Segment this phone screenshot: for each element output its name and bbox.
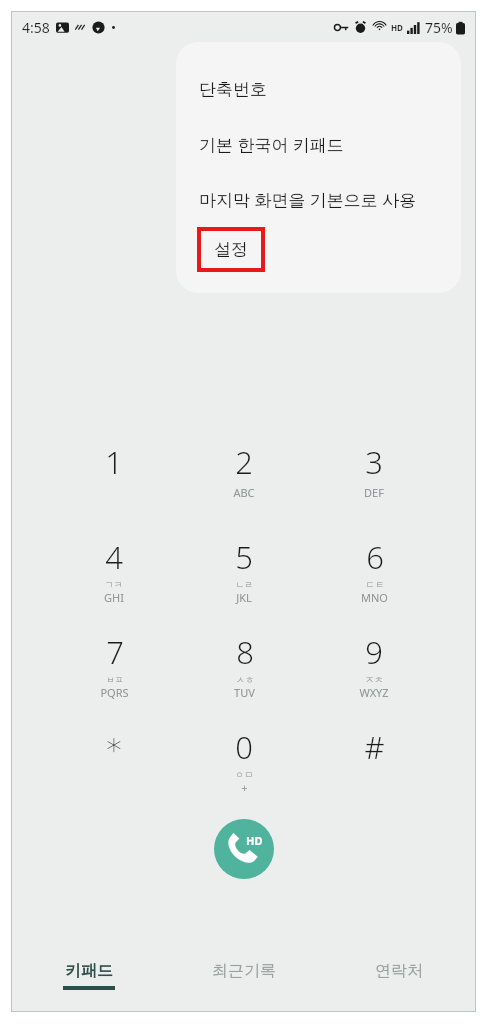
staticText: DEF (364, 485, 384, 500)
staticText: 마지막 화면을 기본으로 사용 (199, 188, 417, 211)
staticText: 최근기록 (212, 961, 276, 981)
staticText: 3 (365, 441, 383, 483)
button[interactable]: 3 (309, 441, 439, 516)
staticText: TUV (234, 685, 255, 700)
button[interactable]: ∗ (49, 726, 179, 801)
staticText: ㄷㅌ (366, 579, 384, 590)
button[interactable]: 4 (49, 536, 179, 611)
staticText: ㅈㅊ (365, 674, 383, 685)
staticText: HD (246, 833, 263, 848)
staticText: HD (391, 22, 403, 33)
staticText: + (241, 780, 248, 795)
button[interactable]: # (309, 726, 439, 801)
button[interactable]: 7 (49, 631, 179, 706)
staticText: WXYZ (359, 685, 389, 700)
button[interactable]: 키패드 (29, 950, 149, 990)
button[interactable]: 1 (49, 441, 179, 516)
staticText: 4:58 (22, 18, 50, 37)
button[interactable]: 2 (179, 441, 309, 516)
staticText: 75% (425, 18, 453, 37)
button[interactable]: 9 (309, 631, 439, 706)
staticText: 5 (235, 536, 253, 578)
button[interactable]: 마지막 화면을 기본으로 사용 (176, 172, 461, 227)
staticText: ㅂㅍ (106, 674, 124, 685)
staticText: MNO (361, 590, 388, 605)
button[interactable]: 연락처 (339, 950, 459, 981)
staticText: 키패드 (65, 961, 113, 981)
staticText: 0 (235, 726, 253, 768)
staticText: 2 (235, 441, 253, 483)
staticText: ㅇㅁ (235, 769, 253, 780)
button[interactable]: 5 (179, 536, 309, 611)
staticText: 1 (105, 441, 123, 483)
button[interactable]: 최근기록 (184, 950, 304, 981)
button[interactable]: 0 (179, 726, 309, 801)
staticText: ABC (233, 485, 255, 500)
staticText: 연락처 (375, 961, 423, 981)
button[interactable]: Call (214, 819, 274, 879)
staticText: PQRS (100, 685, 129, 700)
staticText: 단축번호 (199, 79, 267, 100)
button[interactable]: 기본 한국어 키패드 (176, 117, 461, 172)
staticText: 6 (366, 536, 384, 578)
staticText: ㄱㅋ (105, 579, 123, 590)
staticText: GHI (104, 590, 124, 605)
staticText: ㄴㄹ (235, 579, 253, 590)
button[interactable]: 8 (179, 631, 309, 706)
staticText: 9 (365, 631, 383, 673)
button[interactable]: 6 (309, 536, 439, 611)
staticText: 설정 (214, 239, 248, 260)
staticText: 7 (106, 631, 124, 673)
staticText: 8 (236, 631, 254, 673)
button[interactable]: 설정 (176, 227, 461, 272)
button[interactable]: 단축번호 (176, 62, 461, 117)
staticText: ㅅㅎ (236, 674, 254, 685)
staticText: ∗ (104, 726, 124, 762)
staticText: 기본 한국어 키패드 (199, 133, 344, 156)
staticText: 4 (105, 536, 123, 578)
staticText: # (364, 726, 385, 768)
staticText: JKL (236, 590, 252, 605)
